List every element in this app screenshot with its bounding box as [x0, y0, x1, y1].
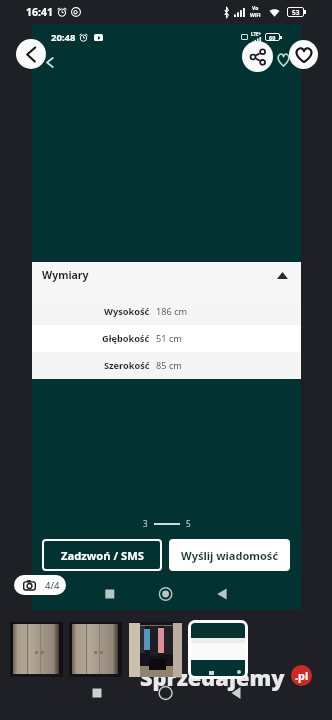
staticText: 60	[269, 34, 276, 41]
button[interactable]: Wyślij wiadomość	[169, 539, 290, 571]
staticText: 20:48	[51, 31, 76, 43]
staticText: LTE+	[251, 31, 262, 37]
staticText: Wyślij wiadomość	[181, 548, 279, 563]
staticText: Szerokość	[104, 359, 150, 372]
staticText: 85 cm	[156, 359, 182, 372]
button[interactable]: Wymiary	[32, 262, 301, 298]
button[interactable]: Photo	[10, 622, 63, 677]
button[interactable]: Photo 4	[191, 623, 245, 676]
staticText: Wysokość	[104, 305, 150, 318]
button[interactable]: Photo	[69, 622, 122, 677]
staticText: 4/4	[45, 579, 60, 592]
button[interactable]: Favorite	[289, 40, 318, 69]
staticText: 186 cm	[156, 305, 188, 318]
staticText: 16:41	[26, 5, 53, 19]
staticText: 53	[292, 8, 300, 17]
button[interactable]: Photo	[129, 622, 182, 677]
staticText: Głębokość	[102, 332, 150, 345]
button[interactable]: Zadzwoń / SMS	[42, 539, 162, 571]
staticText: 3	[143, 518, 148, 529]
button[interactable]: Share	[242, 41, 273, 72]
staticText: .pl	[295, 668, 309, 683]
staticText: Zadzwoń / SMS	[61, 548, 144, 563]
staticText: 51 cm	[156, 332, 182, 345]
staticText: 5	[186, 518, 191, 529]
button[interactable]: Back	[16, 39, 46, 69]
button[interactable]: Photos 4 of 4	[14, 575, 66, 595]
staticText: Sprzedajemy	[140, 663, 285, 693]
staticText: Wymiary	[42, 268, 89, 282]
staticText: WiFi	[250, 12, 261, 19]
staticText: Vo	[252, 5, 259, 12]
